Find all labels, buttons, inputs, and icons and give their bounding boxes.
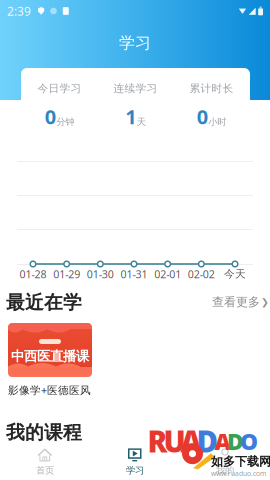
staticText: 查看更多 bbox=[212, 295, 260, 309]
staticText: 学习 bbox=[119, 33, 151, 53]
staticText: 影像学+医德医风 bbox=[8, 383, 91, 397]
staticText: D bbox=[227, 426, 244, 456]
staticText: 中西医直播课 bbox=[11, 348, 89, 364]
staticText: 我的 bbox=[216, 465, 234, 476]
staticText: 01-29 bbox=[53, 267, 80, 281]
staticText: 首页 bbox=[36, 465, 54, 476]
staticText: 今日学习 bbox=[37, 82, 81, 95]
staticText: R bbox=[147, 422, 167, 461]
staticText: A bbox=[180, 422, 201, 461]
staticText: 02-02 bbox=[188, 267, 215, 281]
staticText: 0 bbox=[45, 103, 56, 130]
staticText: 01-28 bbox=[19, 267, 46, 281]
staticText: 最近在学 bbox=[6, 291, 82, 314]
staticText: 分钟 bbox=[56, 116, 74, 128]
staticText: ❯ bbox=[261, 297, 269, 307]
button[interactable]: 查看更多 bbox=[212, 296, 269, 308]
button[interactable]: 中西医直播课 bbox=[8, 323, 94, 397]
staticText: 学习 bbox=[126, 465, 144, 476]
staticText: 如多下载网 bbox=[211, 454, 270, 469]
staticText: O bbox=[240, 426, 258, 456]
staticText: 0 bbox=[197, 103, 208, 130]
staticText: U bbox=[163, 422, 185, 461]
button[interactable]: 学习 bbox=[90, 444, 180, 480]
staticText: 连续学习 bbox=[113, 82, 157, 95]
staticText: 2:39 bbox=[7, 3, 31, 19]
staticText: 01-30 bbox=[87, 267, 114, 281]
staticText: D bbox=[196, 422, 218, 461]
staticText: www.ruaduo.com bbox=[211, 469, 266, 478]
staticText: 01-31 bbox=[120, 267, 147, 281]
staticText: 累计时长 bbox=[189, 82, 233, 95]
staticText: A bbox=[214, 426, 230, 456]
staticText: 1 bbox=[125, 103, 136, 130]
staticText: 02-01 bbox=[154, 267, 181, 281]
staticText: 今天 bbox=[224, 267, 246, 280]
staticText: 我的课程 bbox=[6, 421, 82, 444]
button[interactable]: 我的 bbox=[180, 444, 270, 480]
staticText: 小时 bbox=[208, 116, 226, 128]
staticText: 天 bbox=[137, 116, 146, 128]
button[interactable]: 首页 bbox=[0, 444, 90, 480]
